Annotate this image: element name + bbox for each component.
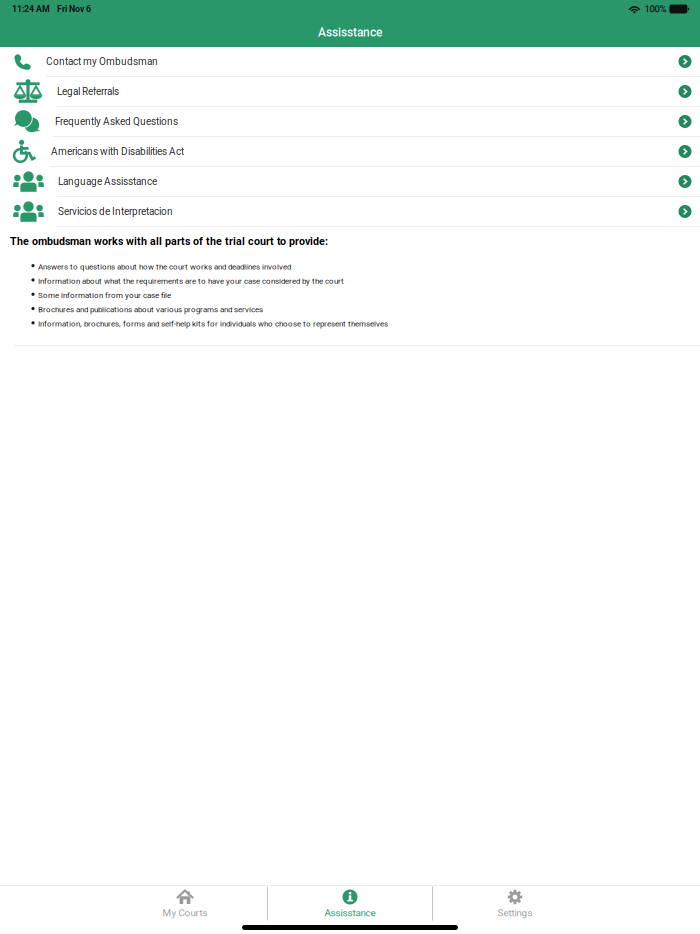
button[interactable]: Contact my Ombudsman (0, 47, 700, 77)
staticText: Information about what the requirements … (38, 276, 344, 286)
staticText: Information, brochures, forms and self-h… (38, 319, 388, 329)
staticText: Some information from your case file (38, 291, 171, 300)
button[interactable]: Servicios de Interpretacion (0, 197, 700, 227)
staticText: Contact my Ombudsman (46, 56, 158, 67)
button[interactable]: Frequently Asked Questions (0, 107, 700, 137)
button[interactable]: Legal Referrals (0, 77, 700, 107)
staticText: Americans with Disabilities Act (51, 146, 184, 157)
staticText: Assisstance (324, 907, 375, 919)
button[interactable]: Settings (433, 886, 597, 921)
staticText: Servicios de Interpretacion (58, 206, 173, 217)
staticText: Frequently Asked Questions (55, 116, 178, 127)
button[interactable]: Assisstance (268, 886, 432, 921)
staticText: 11:24 AM (12, 4, 50, 14)
staticText: Settings (497, 907, 532, 919)
staticText: Legal Referrals (57, 86, 119, 97)
staticText: My Courts (162, 907, 207, 919)
staticText: 100% (644, 3, 666, 15)
button[interactable]: Language Assisstance (0, 167, 700, 197)
staticText: Fri Nov 6 (57, 4, 91, 14)
staticText: Assisstance (318, 25, 382, 40)
staticText: Brochures and publications about various… (38, 305, 263, 314)
staticText: Language Assisstance (58, 176, 157, 187)
staticText: The ombudsman works with all parts of th… (10, 235, 328, 247)
button[interactable]: Americans with Disabilities Act (0, 137, 700, 167)
button[interactable]: My Courts (103, 886, 267, 921)
staticText: Answers to questions about how the court… (38, 262, 291, 271)
